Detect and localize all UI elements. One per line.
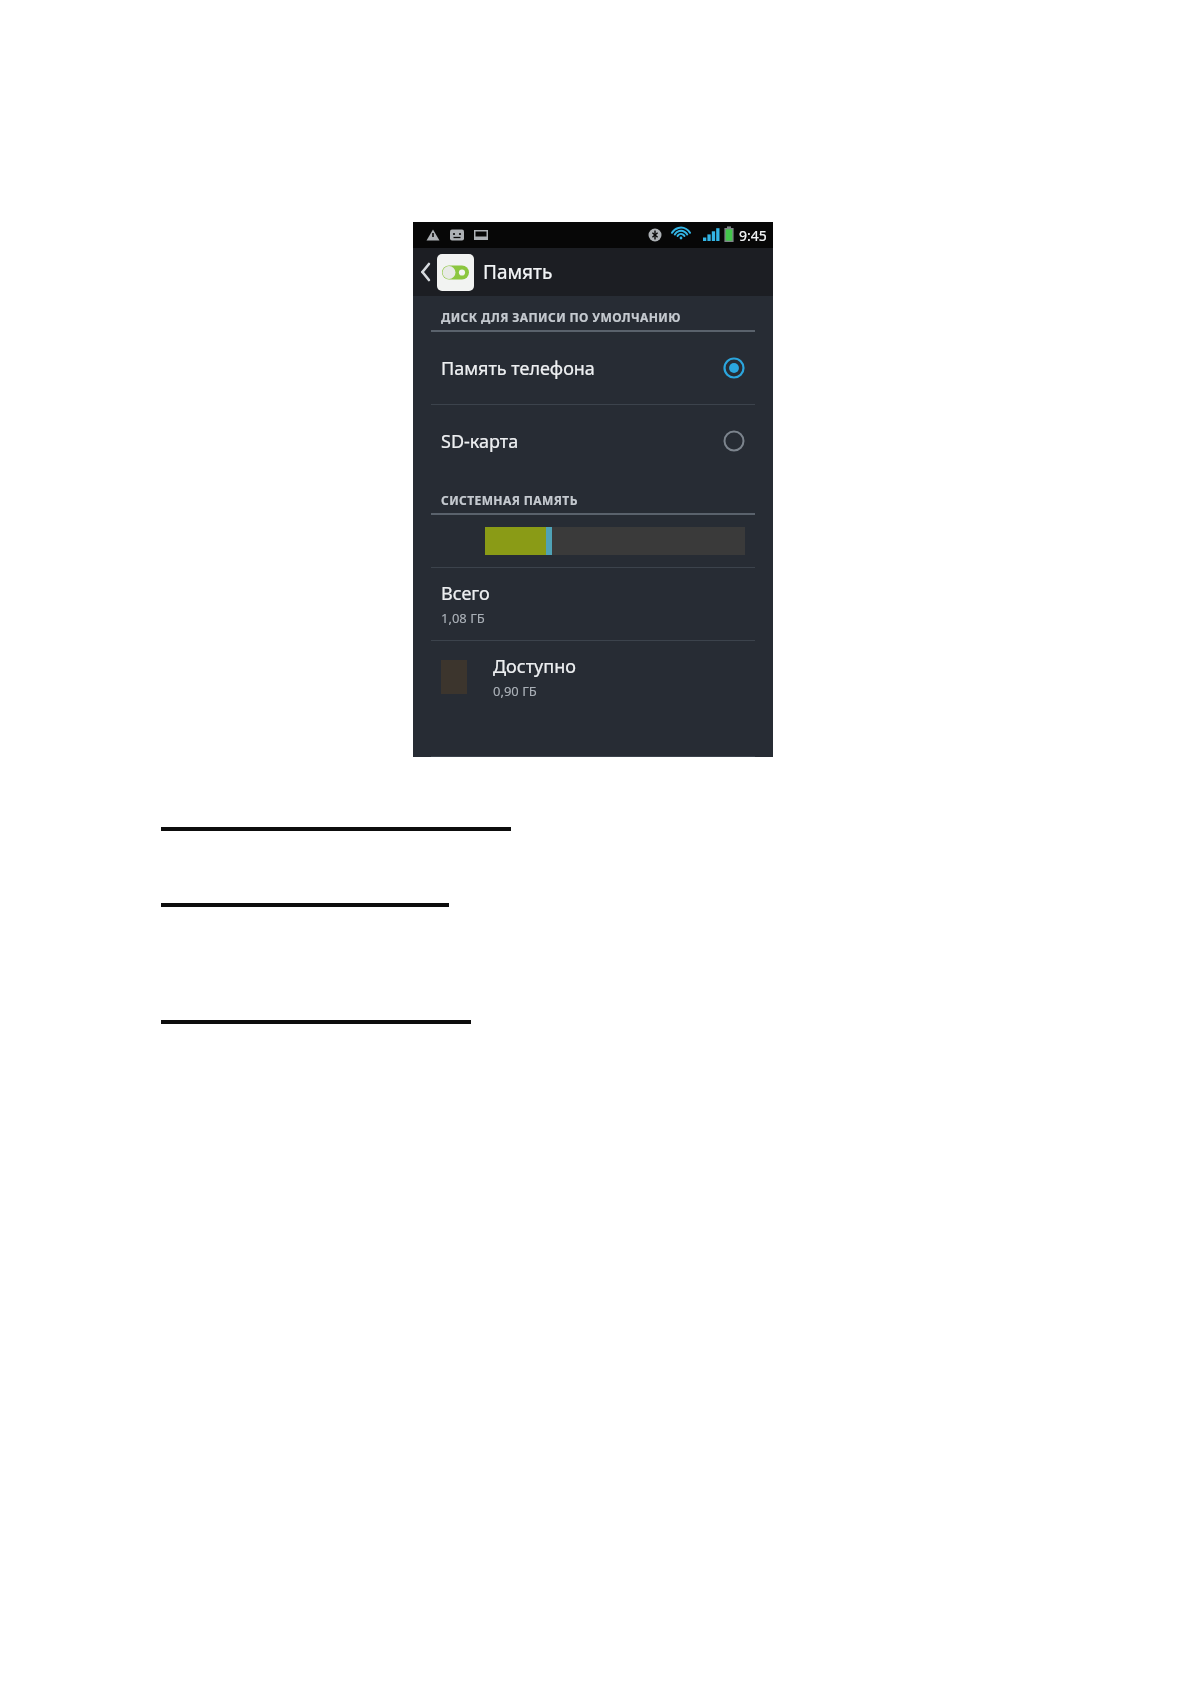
button[interactable]: Всего	[413, 568, 773, 640]
staticText: Всего	[441, 581, 490, 606]
staticText: Доступно	[493, 654, 576, 679]
button[interactable]: SD-карта	[413, 405, 773, 477]
staticText: 0,90 ГБ	[493, 682, 537, 700]
staticText: Память телефона	[441, 356, 595, 381]
staticText: 9:45	[739, 226, 767, 245]
button[interactable]: Доступно	[413, 641, 773, 713]
button[interactable]: Память телефона	[413, 332, 773, 404]
staticText: Память	[483, 259, 553, 285]
staticText: 1,08 ГБ	[441, 609, 485, 627]
staticText: ДИСК ДЛЯ ЗАПИСИ ПО УМОЛЧАНИЮ	[441, 309, 681, 325]
button[interactable]: Back	[413, 248, 773, 296]
other: Back	[419, 248, 435, 296]
staticText: СИСТЕМНАЯ ПАМЯТЬ	[441, 492, 578, 508]
staticText: SD-карта	[441, 429, 519, 454]
